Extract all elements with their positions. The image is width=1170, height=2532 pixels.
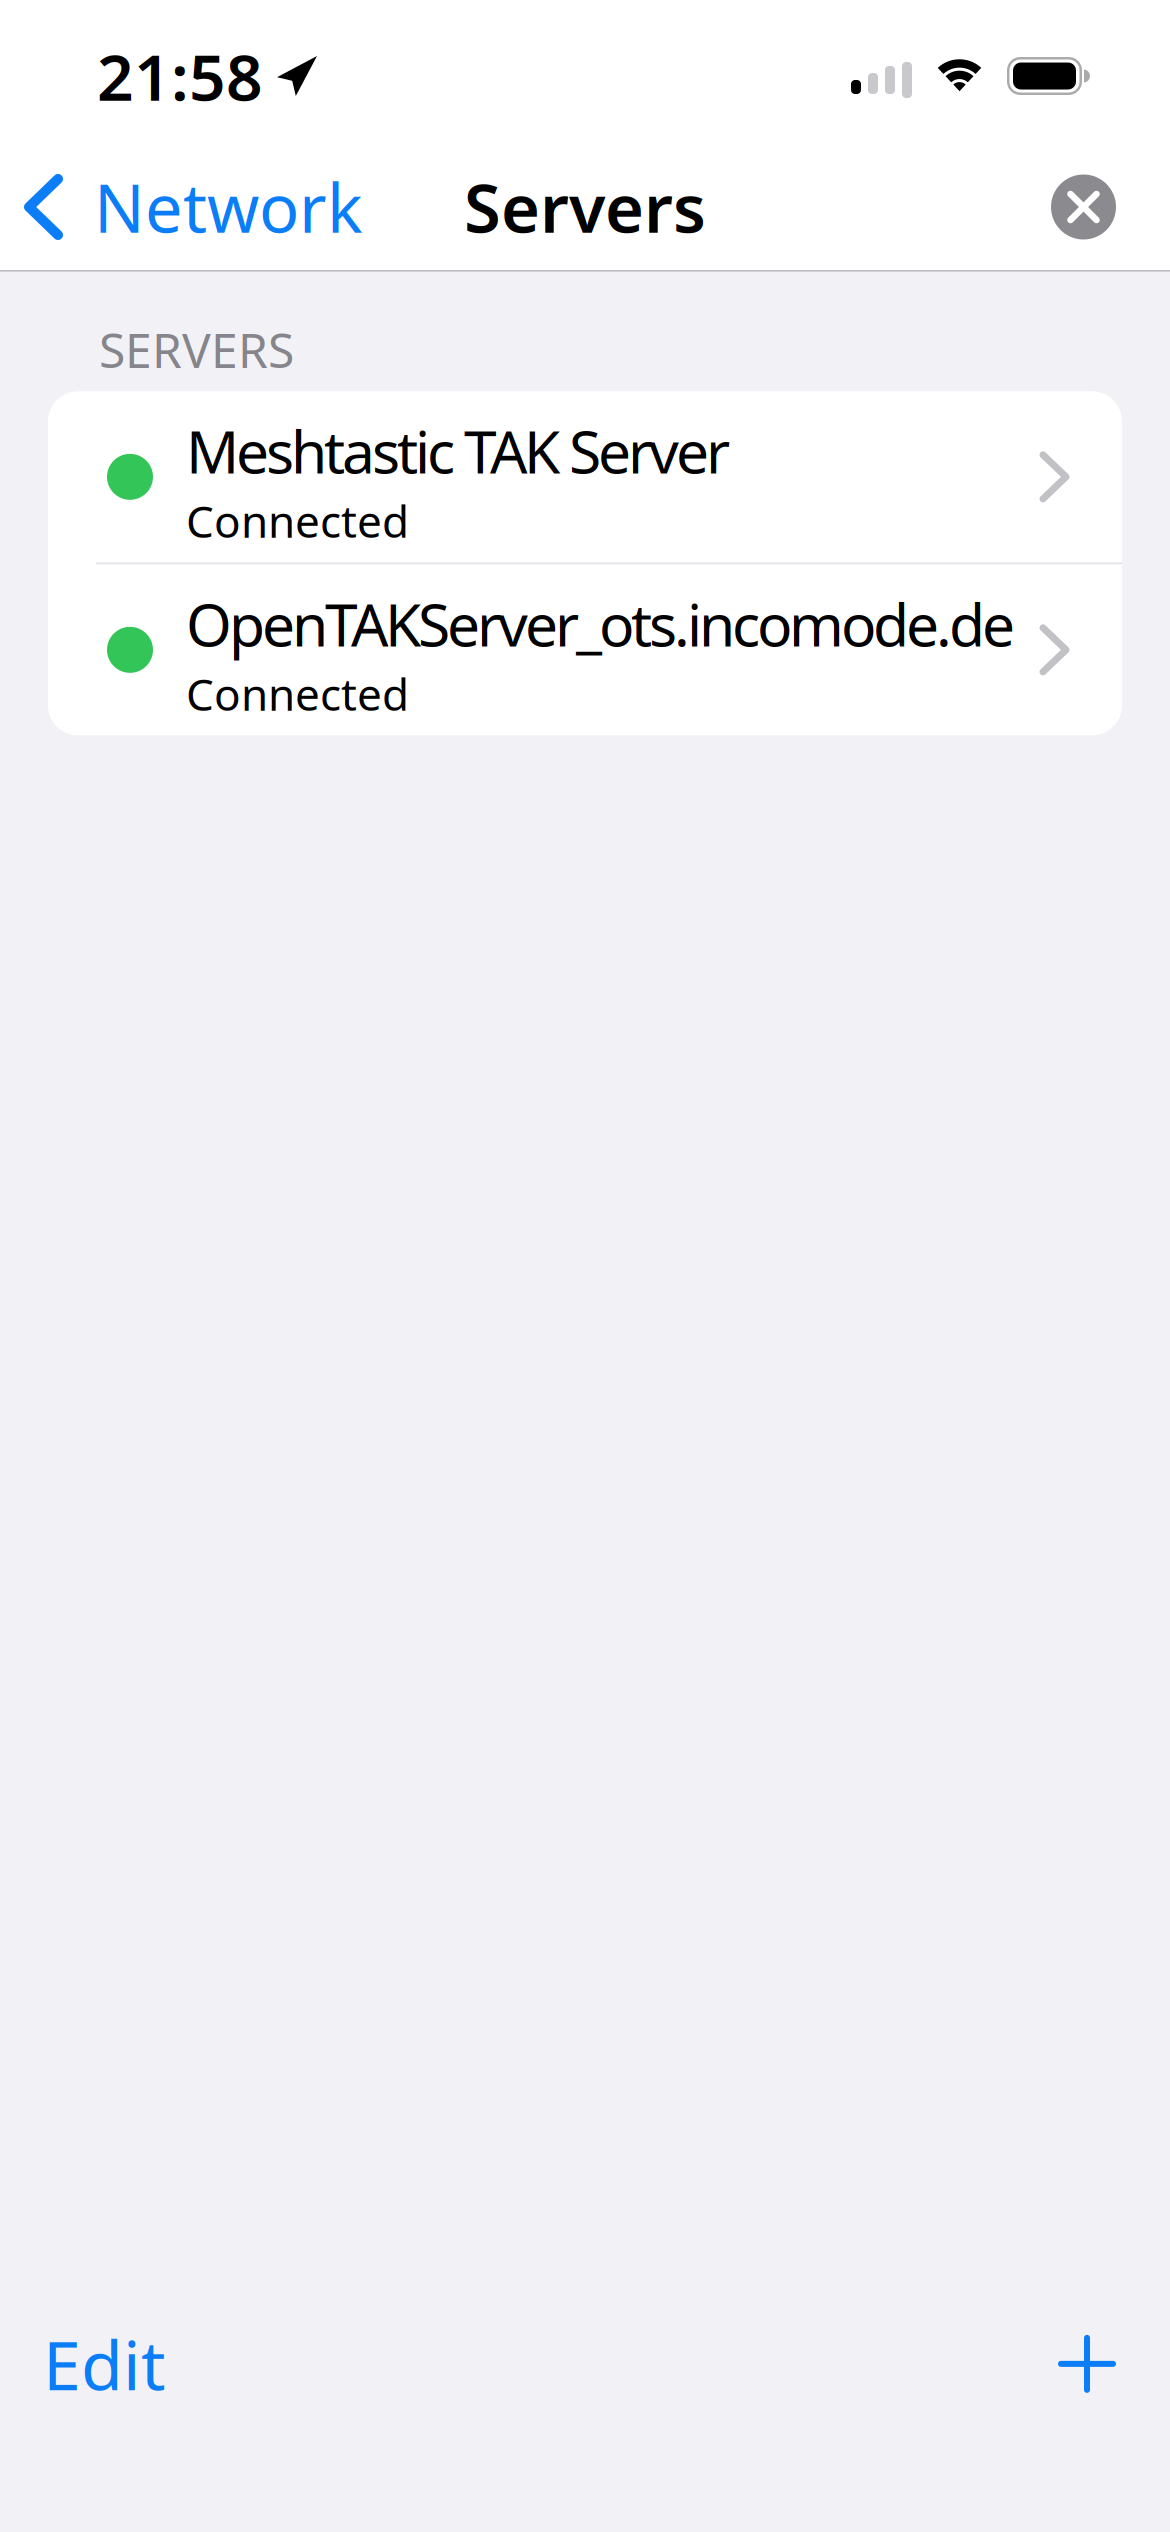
staticText: SERVERS — [99, 318, 294, 381]
staticText: Edit — [43, 2319, 166, 2409]
staticText: Connected — [186, 492, 409, 550]
staticText: Meshtastic TAK Server — [186, 412, 730, 490]
button[interactable]: Add server — [1061, 2338, 1113, 2390]
staticText: OpenTAKServer_ots.incomode.de — [186, 585, 1015, 663]
button[interactable]: Close — [1051, 174, 1116, 239]
staticText: Connected — [186, 665, 409, 723]
staticText: Servers — [464, 163, 706, 251]
button[interactable]: OpenTAKServer_ots.incomode.de — [48, 564, 1122, 735]
button[interactable]: Network — [0, 163, 363, 251]
button[interactable]: Edit — [43, 2319, 166, 2409]
button[interactable]: Meshtastic TAK Server — [48, 391, 1122, 562]
staticText: 21:58 — [97, 33, 263, 118]
staticText: Network — [94, 163, 363, 251]
